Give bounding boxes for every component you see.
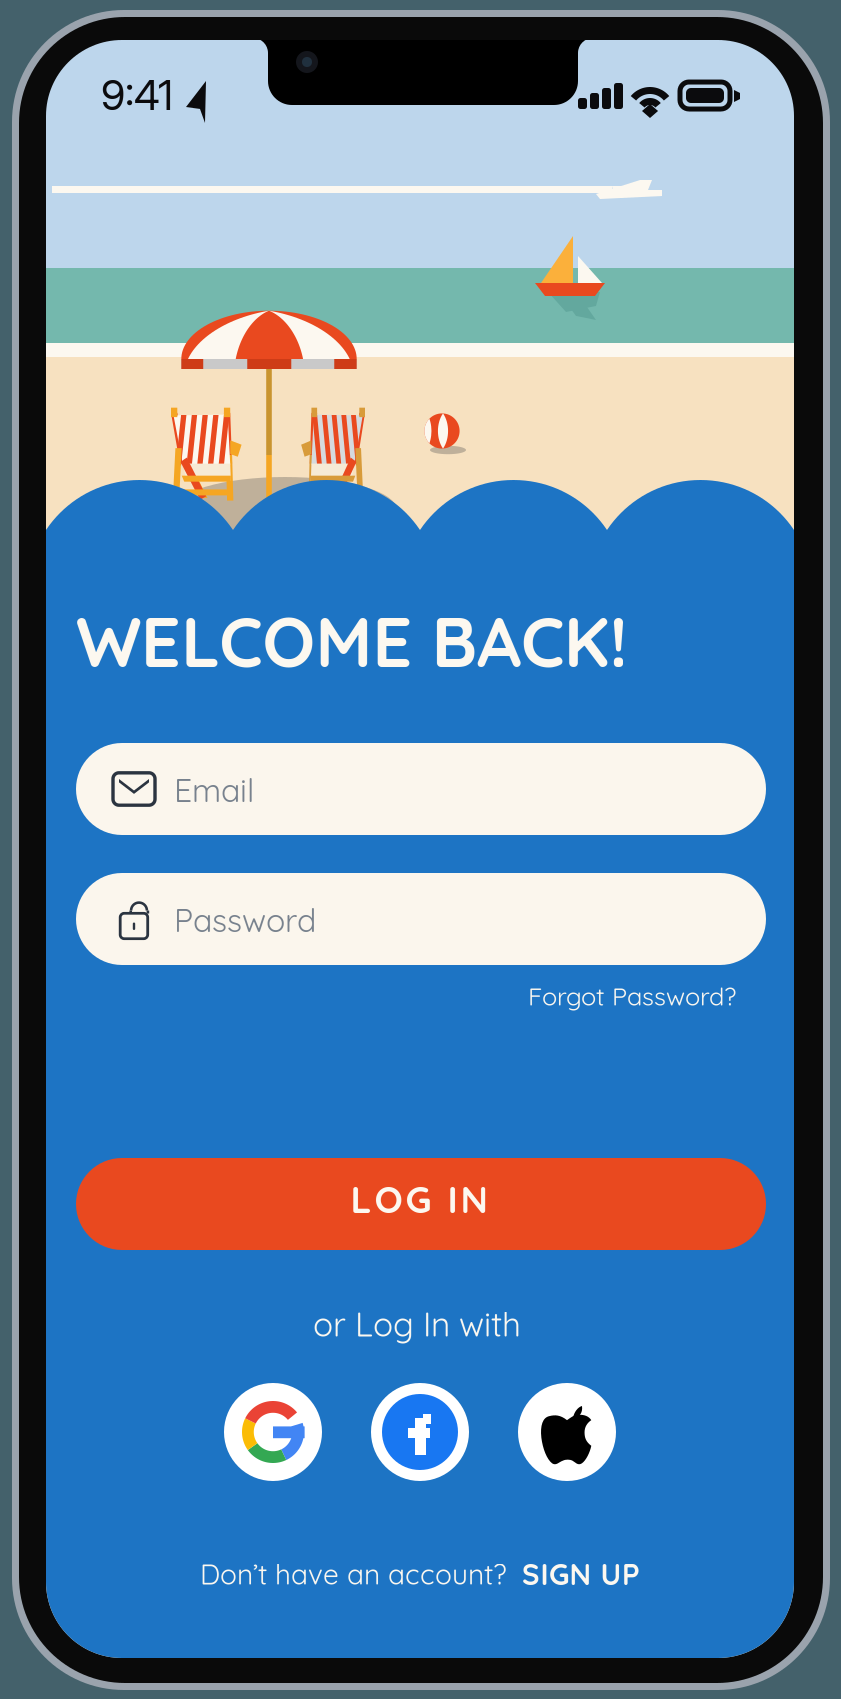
staticText: WELCOME BACK!	[76, 598, 628, 684]
staticText: Forgot Password?	[528, 980, 736, 1012]
staticText: LOG IN	[350, 1176, 487, 1222]
button[interactable]: LOG IN	[0, 0, 841, 1699]
staticText: Password	[174, 900, 316, 940]
button[interactable]: Forgot Password?	[436, 972, 736, 1020]
staticText: 9:41	[101, 70, 173, 120]
button[interactable]: Don’t have an account?	[110, 1547, 730, 1601]
staticText: Email	[174, 770, 254, 810]
button[interactable]: Log in with Google	[0, 0, 841, 1699]
button[interactable]: Log in with Apple	[0, 0, 841, 1699]
button[interactable]: Log in with Facebook	[0, 0, 841, 1699]
staticText: Don’t have an account?	[200, 1556, 507, 1591]
button[interactable]: Password	[0, 0, 841, 1699]
button[interactable]: Email	[0, 0, 841, 1699]
staticText: or Log In with	[313, 1303, 521, 1345]
staticText: SIGN UP	[522, 1556, 640, 1592]
